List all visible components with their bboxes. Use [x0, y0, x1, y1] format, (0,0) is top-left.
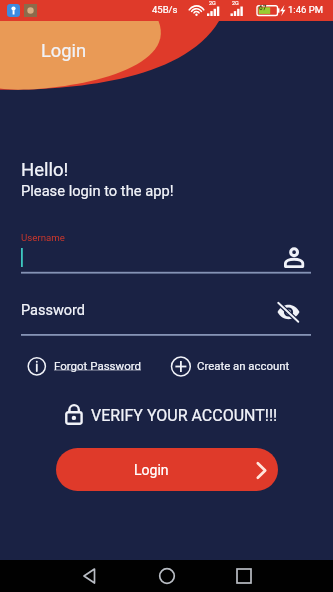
button[interactable]: Back — [78, 564, 102, 588]
button[interactable]: Home — [155, 564, 179, 588]
staticText: 1:46 PM — [288, 4, 323, 15]
staticText: Username — [21, 232, 65, 243]
staticText: Please login to the app! — [21, 182, 174, 199]
button[interactable]: Create an account — [170, 352, 297, 380]
staticText: 2G — [232, 0, 239, 6]
staticText: 67 — [259, 4, 267, 12]
staticText: VERIFY YOUR ACCOUNT!!! — [91, 406, 278, 425]
staticText: Create an account — [197, 359, 290, 372]
staticText: Password — [21, 302, 86, 319]
button[interactable]: Forgot Password — [25, 352, 145, 380]
staticText: Forgot Password — [54, 359, 142, 372]
staticText: Login — [41, 40, 87, 61]
staticText: Hello! — [21, 159, 69, 181]
button[interactable]: Login — [56, 448, 278, 491]
button[interactable]: Recents — [232, 564, 256, 588]
staticText: 45B/s — [152, 4, 178, 15]
button[interactable]: VERIFY YOUR ACCOUNT!!! — [62, 402, 282, 428]
staticText: 2G — [209, 0, 216, 6]
staticText: Login — [134, 462, 169, 478]
